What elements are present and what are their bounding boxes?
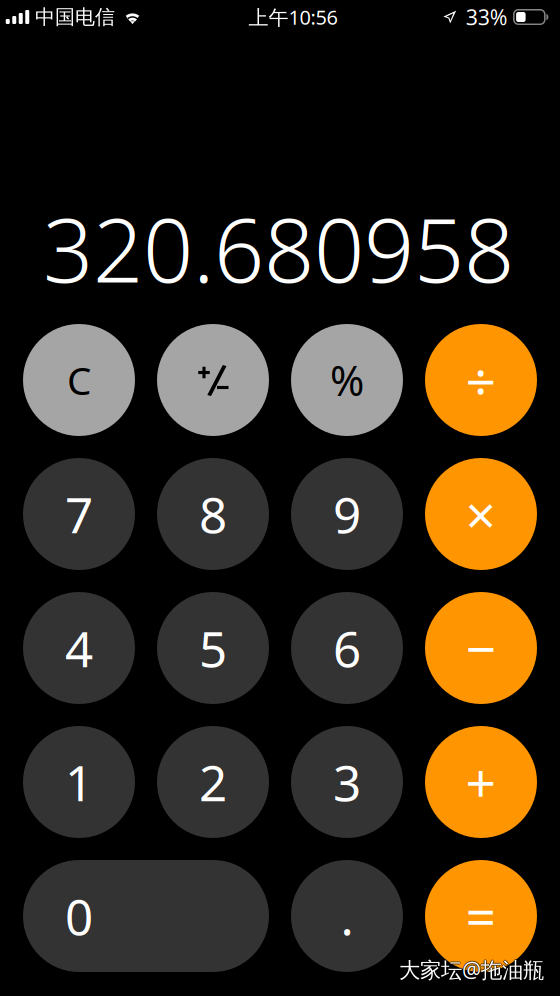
staticText: +: [465, 747, 496, 817]
button[interactable]: Multiply: [425, 458, 537, 570]
button[interactable]: Divide: [425, 324, 537, 436]
staticText: 33%: [466, 3, 508, 31]
button[interactable]: Subtract: [425, 592, 537, 704]
staticText: 大家坛@拖油瓶: [399, 956, 544, 985]
staticText: 0: [65, 883, 93, 949]
button[interactable]: 4: [23, 592, 135, 704]
staticText: =: [465, 881, 496, 951]
staticText: 4: [65, 615, 93, 681]
staticText: ×: [465, 479, 496, 549]
button[interactable]: 0: [23, 860, 269, 972]
button[interactable]: Decimal point: [291, 860, 403, 972]
button[interactable]: 3: [291, 726, 403, 838]
staticText: 大家坛@拖油瓶: [399, 955, 544, 984]
staticText: 7: [65, 481, 93, 547]
staticText: 9: [333, 481, 361, 547]
staticText: 中国电信: [35, 5, 115, 29]
staticText: 8: [199, 481, 227, 547]
staticText: .: [340, 883, 353, 949]
staticText: 1: [65, 749, 93, 815]
staticText: 大家坛@拖油瓶: [400, 955, 545, 984]
staticText: 大家坛@拖油瓶: [399, 954, 544, 983]
button[interactable]: 8: [157, 458, 269, 570]
staticText: 3: [333, 749, 361, 815]
button[interactable]: Toggle sign: [157, 324, 269, 436]
staticText: %: [330, 353, 364, 407]
staticText: −: [465, 613, 496, 683]
button[interactable]: Equals: [425, 860, 537, 972]
button[interactable]: Add: [425, 726, 537, 838]
button[interactable]: 1: [23, 726, 135, 838]
staticText: 2: [199, 749, 227, 815]
button[interactable]: 6: [291, 592, 403, 704]
button[interactable]: Percent: [291, 324, 403, 436]
staticText: C: [67, 354, 91, 406]
button[interactable]: Clear: [23, 324, 135, 436]
button[interactable]: 5: [157, 592, 269, 704]
button[interactable]: 2: [157, 726, 269, 838]
staticText: 6: [333, 615, 361, 681]
staticText: ÷: [465, 345, 496, 415]
button[interactable]: 7: [23, 458, 135, 570]
staticText: 320.680958: [43, 190, 514, 307]
staticText: 大家坛@拖油瓶: [398, 955, 543, 984]
staticText: 5: [199, 615, 227, 681]
button[interactable]: 9: [291, 458, 403, 570]
staticText: 上午10:56: [248, 4, 337, 30]
